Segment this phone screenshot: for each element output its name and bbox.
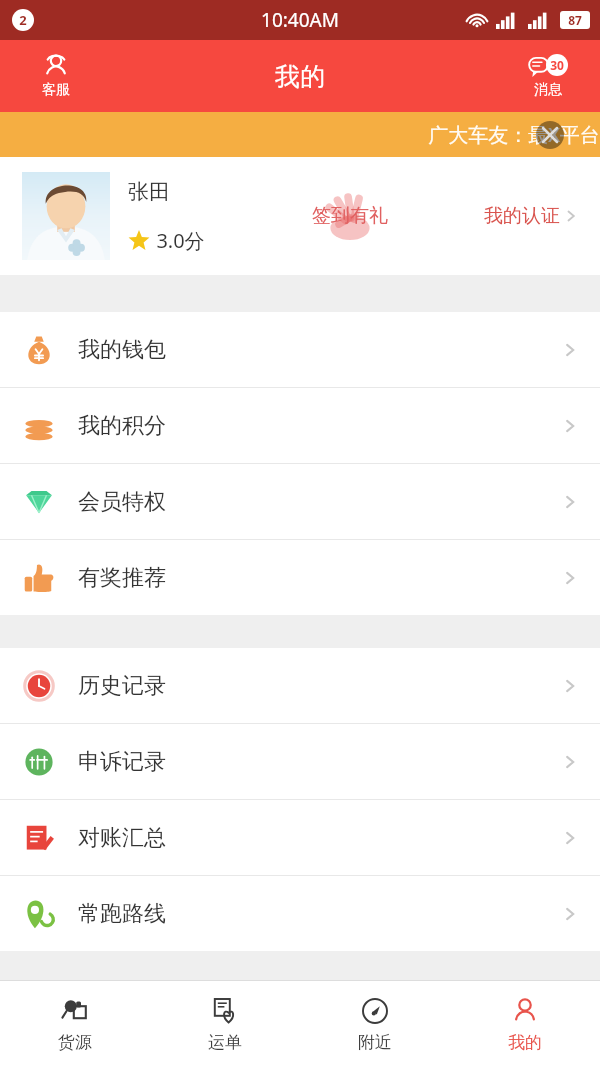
button[interactable]: 运单: [150, 981, 300, 1067]
button[interactable]: 有奖推荐: [0, 540, 600, 615]
staticText: 消息: [534, 81, 562, 99]
button[interactable]: 签到有礼: [306, 180, 394, 252]
staticText: 广大车友：最X平台: [428, 121, 600, 148]
button[interactable]: 我的认证: [480, 200, 582, 232]
button[interactable]: 我的钱包: [0, 312, 600, 387]
button[interactable]: 客服: [38, 49, 74, 103]
button[interactable]: 货源: [0, 981, 150, 1067]
staticText: 运单: [208, 1032, 242, 1053]
staticText: 87: [568, 12, 582, 28]
staticText: 我的钱包: [78, 336, 166, 364]
staticText: 附近: [358, 1032, 392, 1053]
staticText: 常跑路线: [78, 900, 166, 928]
button[interactable]: 关闭: [536, 121, 564, 149]
staticText: 2: [19, 11, 27, 29]
button[interactable]: 常跑路线: [0, 876, 600, 951]
staticText: 我的: [508, 1032, 542, 1053]
button[interactable]: 消息: [524, 50, 572, 103]
button[interactable]: 历史记录: [0, 648, 600, 723]
button[interactable]: 我的积分: [0, 388, 600, 463]
staticText: 30: [550, 57, 564, 73]
staticText: 客服: [42, 81, 70, 99]
staticText: 我的积分: [78, 412, 166, 440]
button[interactable]: 申诉记录: [0, 724, 600, 799]
button[interactable]: 我的: [450, 981, 600, 1067]
staticText: 我的认证: [484, 204, 560, 228]
staticText: 我的: [275, 61, 325, 92]
staticText: 申诉记录: [78, 748, 166, 776]
staticText: 会员特权: [78, 488, 166, 516]
staticText: 对账汇总: [78, 824, 166, 852]
staticText: 历史记录: [78, 672, 166, 700]
staticText: 3.0分: [156, 227, 205, 254]
staticText: 货源: [58, 1032, 92, 1053]
staticText: 签到有礼: [312, 204, 388, 228]
button[interactable]: 会员特权: [0, 464, 600, 539]
staticText: 有奖推荐: [78, 564, 166, 592]
staticText: 10:40AM: [261, 7, 339, 33]
button[interactable]: 对账汇总: [0, 800, 600, 875]
button[interactable]: 附近: [300, 981, 450, 1067]
staticText: 张田: [128, 179, 170, 205]
